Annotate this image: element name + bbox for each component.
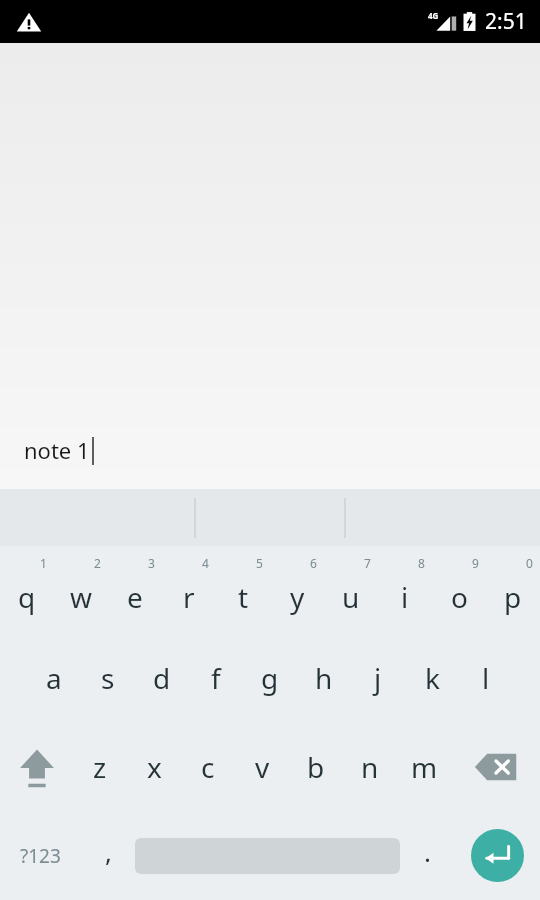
- staticText: 9: [472, 555, 479, 571]
- button[interactable]: Backspace: [451, 722, 540, 811]
- button[interactable]: g: [243, 634, 297, 722]
- staticText: n: [361, 748, 379, 786]
- staticText: 3: [148, 555, 155, 571]
- button[interactable]: h: [297, 634, 351, 722]
- button[interactable]: b: [289, 722, 343, 811]
- button[interactable]: a: [27, 634, 81, 722]
- button[interactable]: 8: [378, 546, 432, 634]
- staticText: m: [411, 748, 438, 786]
- button[interactable]: m: [397, 722, 451, 811]
- button[interactable]: v: [235, 722, 289, 811]
- button[interactable]: 2: [54, 546, 108, 634]
- staticText: v: [255, 748, 270, 786]
- staticText: d: [153, 659, 171, 697]
- button[interactable]: ?123: [0, 811, 81, 900]
- staticText: j: [374, 659, 382, 697]
- staticText: 6: [310, 555, 317, 571]
- button[interactable]: s: [81, 634, 135, 722]
- staticText: 0: [526, 555, 533, 571]
- staticText: 8: [418, 555, 425, 571]
- staticText: c: [201, 748, 215, 786]
- staticText: i: [401, 578, 409, 616]
- button[interactable]: j: [351, 634, 405, 722]
- button[interactable]: k: [405, 634, 459, 722]
- button[interactable]: 3: [108, 546, 162, 634]
- button[interactable]: 0: [486, 546, 540, 634]
- staticText: e: [127, 578, 143, 616]
- staticText: note 1: [24, 435, 90, 465]
- button[interactable]: d: [135, 634, 189, 722]
- button[interactable]: 5: [216, 546, 270, 634]
- button[interactable]: 1: [0, 546, 54, 634]
- button[interactable]: c: [181, 722, 235, 811]
- staticText: r: [183, 578, 195, 616]
- staticText: h: [315, 659, 333, 697]
- button[interactable]: Enter: [471, 829, 524, 882]
- staticText: g: [261, 659, 279, 697]
- button[interactable]: x: [127, 722, 181, 811]
- button[interactable]: 4: [162, 546, 216, 634]
- staticText: k: [425, 659, 440, 697]
- staticText: q: [18, 578, 36, 616]
- button[interactable]: ,: [81, 811, 135, 900]
- button[interactable]: .: [400, 811, 454, 900]
- button[interactable]: f: [189, 634, 243, 722]
- staticText: x: [147, 748, 162, 786]
- staticText: w: [70, 578, 93, 616]
- staticText: t: [238, 578, 249, 616]
- staticText: l: [482, 659, 490, 697]
- staticText: z: [93, 748, 107, 786]
- staticText: 1: [40, 555, 47, 571]
- staticText: 4: [202, 555, 209, 571]
- staticText: u: [342, 578, 360, 616]
- button[interactable]: 6: [270, 546, 324, 634]
- staticText: 7: [364, 555, 371, 571]
- staticText: y: [290, 578, 305, 616]
- staticText: f: [211, 659, 221, 697]
- button[interactable]: 7: [324, 546, 378, 634]
- button[interactable]: note 1: [0, 43, 540, 489]
- button[interactable]: 9: [432, 546, 486, 634]
- staticText: .: [424, 834, 431, 869]
- staticText: 2: [94, 555, 101, 571]
- button[interactable]: n: [343, 722, 397, 811]
- staticText: 5: [256, 555, 263, 571]
- button[interactable]: z: [73, 722, 127, 811]
- staticText: b: [307, 748, 325, 786]
- button[interactable]: Shift: [0, 722, 73, 811]
- staticText: s: [101, 659, 115, 697]
- staticText: 4G: [428, 10, 439, 21]
- staticText: o: [451, 578, 468, 616]
- staticText: a: [46, 659, 62, 697]
- staticText: p: [504, 578, 522, 616]
- button[interactable]: l: [459, 634, 513, 722]
- staticText: ?123: [20, 843, 61, 869]
- staticText: 2:51: [485, 7, 527, 36]
- staticText: ,: [105, 834, 112, 869]
